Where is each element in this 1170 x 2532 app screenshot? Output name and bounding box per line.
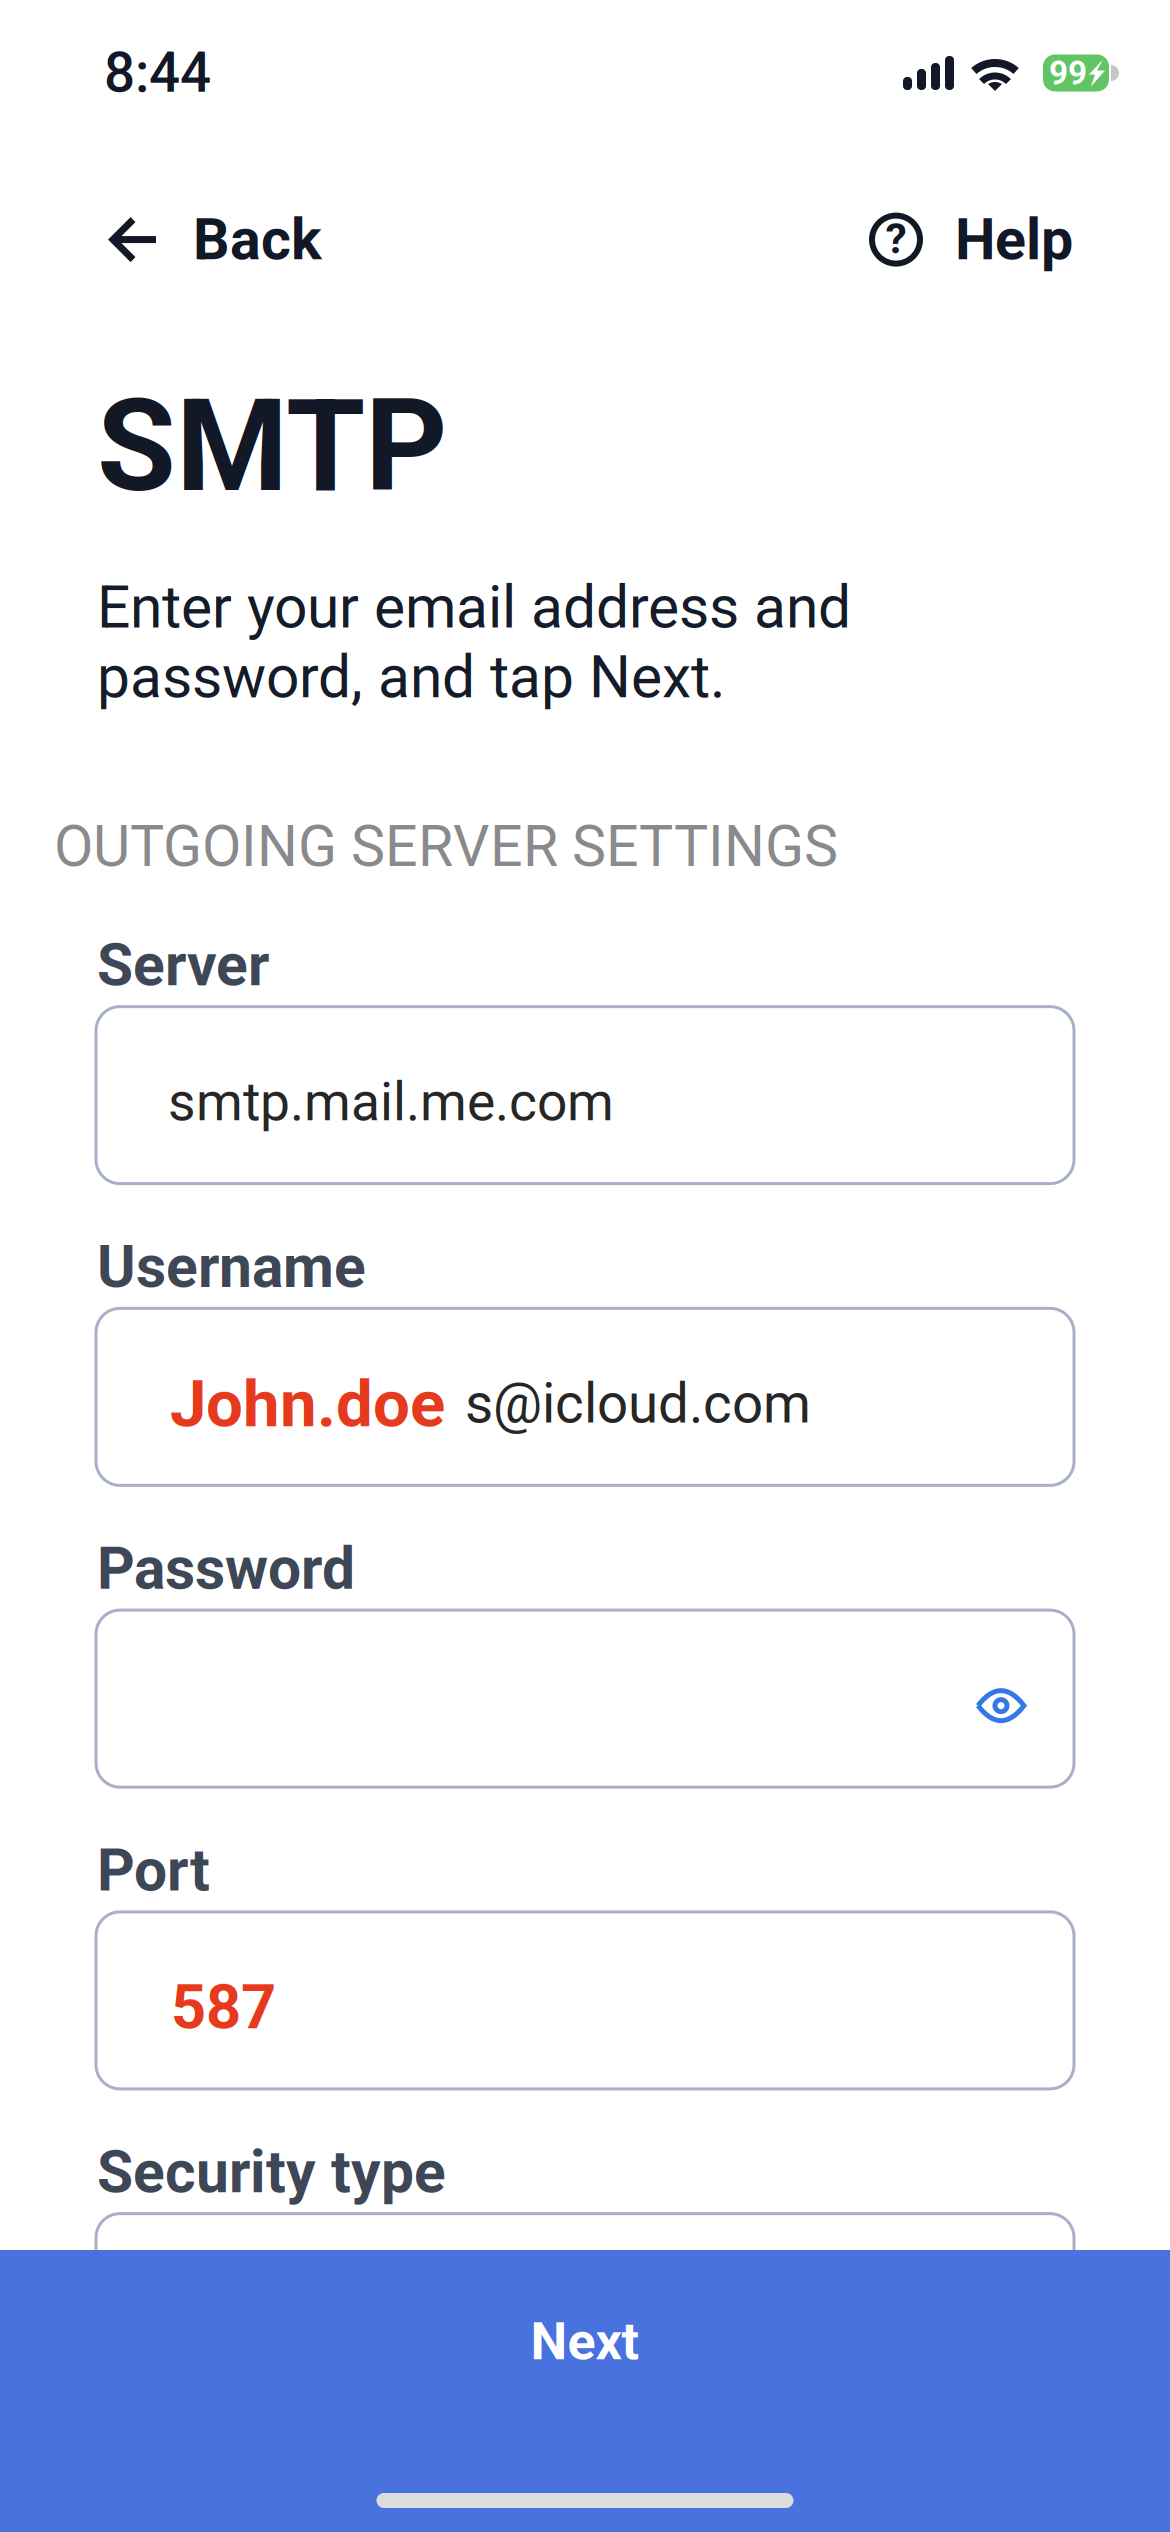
staticText: Password: [97, 1534, 355, 1603]
staticText: Security type: [97, 2138, 446, 2207]
staticText: Port: [97, 1836, 210, 1905]
staticText: s@icloud.com: [465, 1372, 811, 1436]
staticText: 99: [1049, 53, 1087, 93]
button[interactable]: Show password: [962, 1673, 1040, 1739]
staticText: 587: [171, 1971, 276, 2043]
staticText: Back: [193, 206, 322, 273]
staticText: smtp.mail.me.com: [168, 1071, 614, 1133]
staticText: John.doe: [170, 1366, 445, 1442]
staticText: OUTGOING SERVER SETTINGS: [54, 813, 838, 880]
staticText: Username: [97, 1233, 366, 1301]
staticText: SMTP: [97, 371, 448, 521]
staticText: 8:44: [104, 41, 211, 105]
staticText: Next: [530, 2311, 639, 2372]
button[interactable]: ?: [863, 188, 1073, 291]
button[interactable]: Next: [0, 2250, 1170, 2532]
staticText: Enter your email address and password, a…: [97, 573, 851, 712]
staticText: Help: [955, 206, 1073, 273]
staticText: ?: [885, 214, 906, 264]
staticText: Server: [97, 931, 269, 1000]
button[interactable]: Back: [106, 188, 322, 291]
